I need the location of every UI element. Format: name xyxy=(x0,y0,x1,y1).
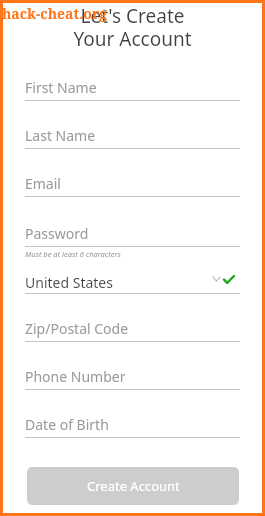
staticText: United States xyxy=(25,273,113,292)
staticText: Password xyxy=(25,224,89,243)
other: Choose country xyxy=(211,274,222,285)
staticText: Last Name xyxy=(25,126,96,145)
button[interactable]: Phone Number xyxy=(25,365,240,390)
button[interactable]: Last Name xyxy=(25,124,240,149)
button[interactable]: Email xyxy=(25,172,240,197)
staticText: Phone Number xyxy=(25,367,126,386)
staticText: hack-cheat.org xyxy=(2,4,108,23)
button[interactable]: Zip/Postal Code xyxy=(25,317,240,342)
staticText: Zip/Postal Code xyxy=(25,319,129,338)
staticText: First Name xyxy=(25,78,97,97)
button[interactable]: Create Account xyxy=(27,467,239,505)
staticText: Email xyxy=(25,174,61,193)
button[interactable]: Date of Birth xyxy=(25,413,240,438)
staticText: Let's Create Your Account xyxy=(3,3,262,52)
button[interactable]: United States xyxy=(25,269,240,294)
staticText: Date of Birth xyxy=(25,415,109,434)
staticText: Must be at least 6 characters xyxy=(25,249,121,259)
staticText: Create Account xyxy=(87,477,180,495)
button[interactable]: Password xyxy=(25,222,240,247)
button[interactable]: First Name xyxy=(25,76,240,101)
